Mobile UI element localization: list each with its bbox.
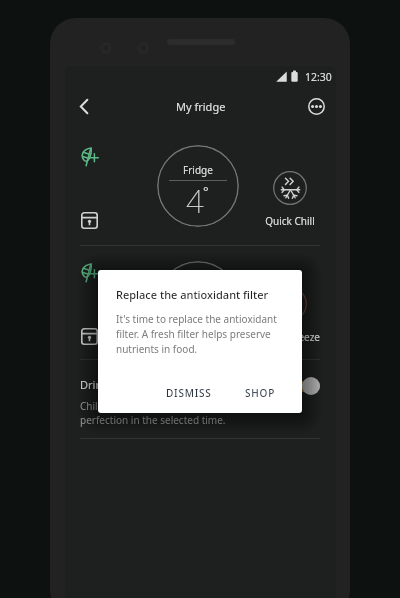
- button[interactable]: Toggle drinks cooling: [286, 377, 320, 395]
- staticText: It's time to replace the antioxidant fil…: [116, 312, 288, 356]
- button[interactable]: Quick Chill: [257, 171, 323, 228]
- staticText: Drinks cooling: [80, 377, 155, 392]
- button[interactable]: Quick Freeze: [257, 287, 323, 344]
- staticText: 4: [186, 180, 204, 222]
- staticText: My fridge: [176, 99, 226, 114]
- staticText: Replace the antioxidant filter: [116, 287, 269, 302]
- staticText: °: [203, 182, 209, 200]
- staticText: Freezer: [181, 279, 216, 293]
- button[interactable]: Fridge: [157, 145, 239, 227]
- button[interactable]: More options: [303, 93, 329, 119]
- button[interactable]: DISMISS: [158, 379, 220, 407]
- staticText: 12:30: [305, 70, 332, 84]
- button[interactable]: SHOP: [237, 379, 284, 407]
- staticText: Fridge: [183, 163, 213, 177]
- staticText: Chill your drinks to perfection in the s…: [80, 399, 280, 427]
- button[interactable]: Back: [71, 93, 97, 119]
- staticText: SHOP: [245, 386, 276, 400]
- staticText: -18: [172, 296, 218, 338]
- staticText: Quick Chill: [265, 214, 315, 228]
- staticText: Quick Freeze: [260, 330, 320, 344]
- staticText: DISMISS: [166, 386, 212, 400]
- button[interactable]: Freezer: [157, 261, 239, 343]
- staticText: °: [217, 298, 223, 316]
